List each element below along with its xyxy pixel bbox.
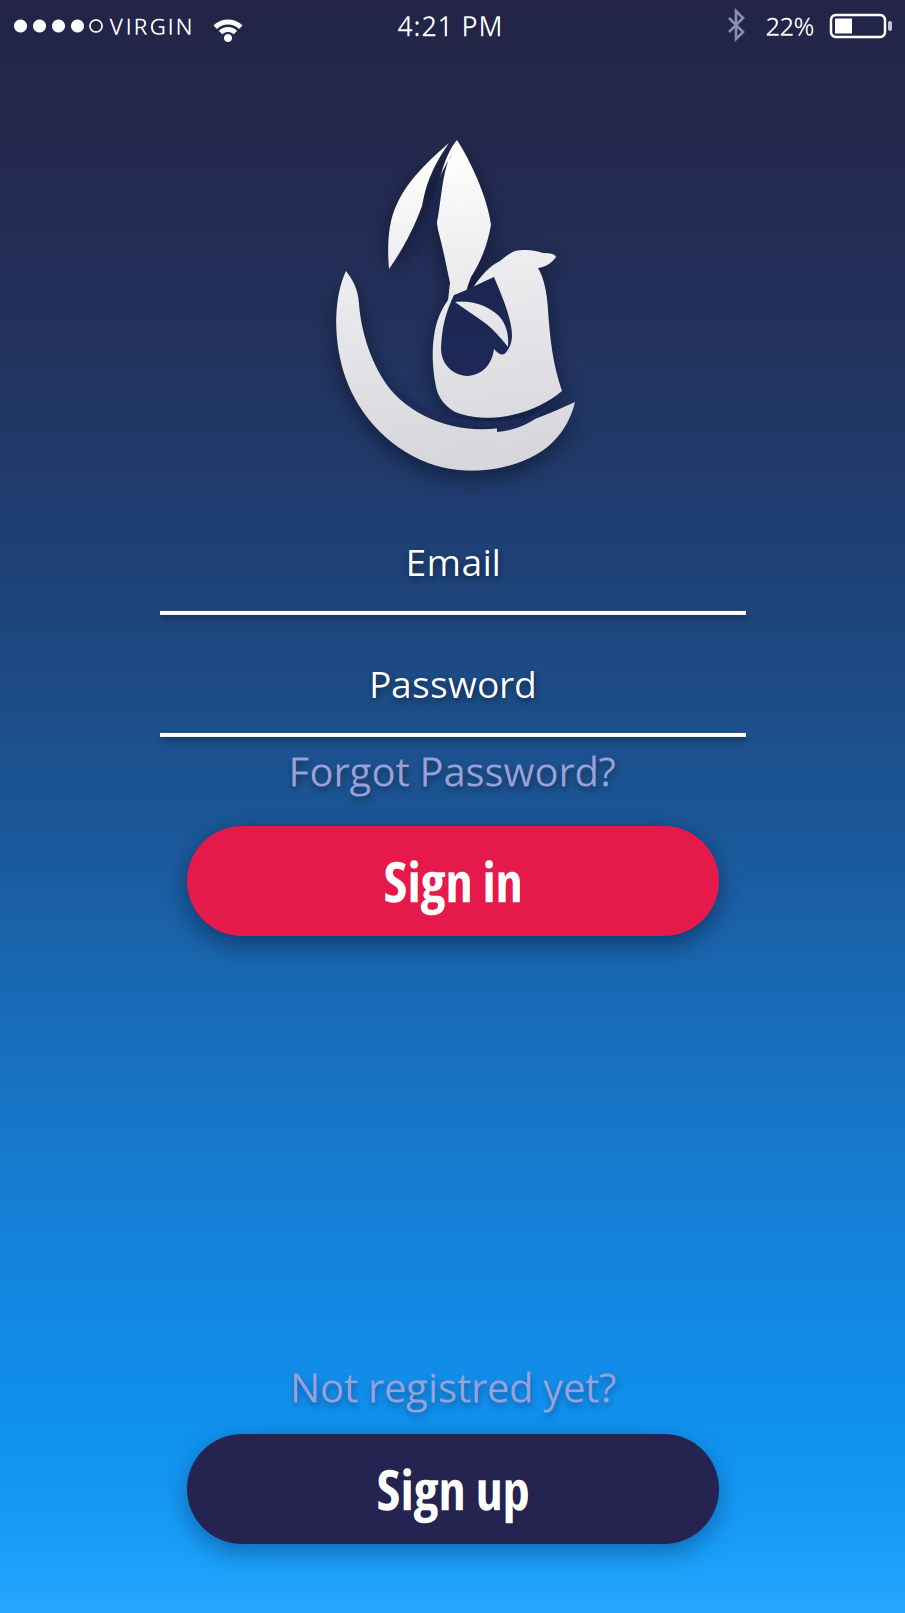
staticText: Sign in (383, 844, 522, 918)
button[interactable]: Forgot Password? (288, 744, 615, 798)
staticText: Email (405, 536, 500, 587)
button[interactable]: Password (160, 658, 746, 737)
staticText: VIRGIN (109, 11, 192, 41)
button[interactable]: Not registred yet? (290, 1360, 616, 1414)
staticText: Sign up (376, 1452, 529, 1526)
staticText: Not registred yet? (290, 1360, 616, 1414)
button[interactable]: Sign in (187, 826, 719, 936)
staticText: 4:21 PM (397, 8, 502, 44)
staticText: Password (369, 658, 537, 709)
button[interactable]: Email (160, 536, 746, 615)
staticText: 22% (765, 9, 814, 43)
button[interactable]: Sign up (187, 1434, 719, 1544)
staticText: Forgot Password? (288, 744, 615, 798)
